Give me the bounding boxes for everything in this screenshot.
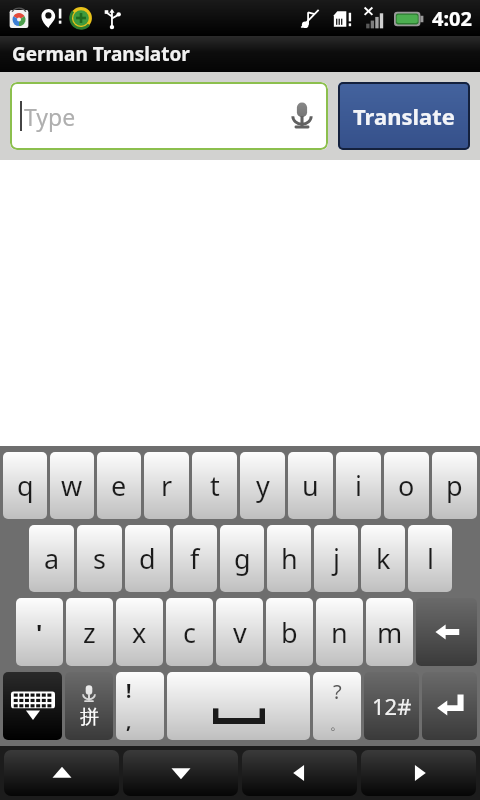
- staticText: s: [93, 540, 106, 577]
- staticText: b: [281, 614, 298, 651]
- staticText: German Translator: [12, 41, 190, 67]
- button[interactable]: q: [3, 452, 47, 519]
- button[interactable]: c: [166, 598, 213, 666]
- staticText: m: [377, 614, 403, 651]
- button[interactable]: v: [216, 598, 263, 666]
- button[interactable]: g: [220, 525, 264, 592]
- staticText: t: [210, 467, 220, 504]
- staticText: q: [17, 467, 34, 504]
- button[interactable]: s: [77, 525, 122, 592]
- button[interactable]: u: [288, 452, 333, 519]
- button[interactable]: t: [192, 452, 237, 519]
- staticText: i: [355, 467, 362, 504]
- button[interactable]: o: [384, 452, 429, 519]
- button[interactable]: m: [366, 598, 413, 666]
- staticText: z: [83, 614, 96, 651]
- staticText: n: [331, 614, 348, 651]
- staticText: k: [376, 540, 391, 577]
- staticText: l: [427, 540, 434, 577]
- button[interactable]: h: [267, 525, 311, 592]
- staticText: f: [190, 540, 200, 577]
- button[interactable]: Backspace: [416, 598, 477, 666]
- button[interactable]: i: [336, 452, 381, 519]
- button[interactable]: x: [116, 598, 163, 666]
- button[interactable]: n: [316, 598, 363, 666]
- button[interactable]: ?: [313, 672, 361, 740]
- button[interactable]: [167, 672, 310, 740]
- button[interactable]: Numbers and symbols: [364, 672, 419, 740]
- staticText: e: [111, 467, 127, 504]
- button[interactable]: a: [29, 525, 74, 592]
- staticText: p: [446, 467, 463, 504]
- staticText: o: [398, 467, 415, 504]
- staticText: u: [302, 467, 319, 504]
- button[interactable]: d: [125, 525, 170, 592]
- button[interactable]: Enter: [422, 672, 477, 740]
- staticText: Translate: [353, 101, 455, 131]
- button[interactable]: Hide keyboard: [3, 672, 62, 740]
- button[interactable]: l: [408, 525, 452, 592]
- staticText: h: [281, 540, 298, 577]
- button[interactable]: k: [361, 525, 405, 592]
- staticText: d: [139, 540, 156, 577]
- button[interactable]: Move right: [361, 750, 476, 796]
- staticText: !: [126, 678, 132, 704]
- button[interactable]: r: [144, 452, 189, 519]
- button[interactable]: Voice and pinyin: [65, 672, 113, 740]
- button[interactable]: w: [50, 452, 94, 519]
- button[interactable]: ': [16, 598, 63, 666]
- staticText: ,: [126, 708, 132, 734]
- staticText: g: [234, 540, 251, 577]
- staticText: 拼: [80, 705, 99, 729]
- staticText: ': [36, 616, 43, 649]
- staticText: ?: [333, 678, 342, 705]
- staticText: w: [61, 467, 83, 504]
- button[interactable]: f: [173, 525, 217, 592]
- staticText: Type: [24, 101, 76, 132]
- button[interactable]: !: [116, 672, 164, 740]
- button[interactable]: y: [240, 452, 285, 519]
- button[interactable]: b: [266, 598, 313, 666]
- button[interactable]: Type: [10, 82, 328, 150]
- button[interactable]: Scroll down: [123, 750, 238, 796]
- button[interactable]: Voice input: [282, 96, 322, 136]
- button[interactable]: z: [66, 598, 113, 666]
- staticText: 。: [330, 716, 344, 734]
- staticText: v: [233, 614, 247, 651]
- staticText: x: [132, 614, 147, 651]
- button[interactable]: Translate: [338, 82, 470, 150]
- staticText: y: [256, 467, 270, 504]
- staticText: 4:02: [432, 5, 472, 32]
- button[interactable]: j: [314, 525, 358, 592]
- staticText: 12#: [372, 691, 412, 721]
- staticText: a: [44, 540, 60, 577]
- button[interactable]: Move left: [242, 750, 357, 796]
- staticText: j: [333, 540, 340, 577]
- staticText: r: [161, 467, 173, 504]
- button[interactable]: p: [432, 452, 477, 519]
- staticText: c: [183, 614, 196, 651]
- button[interactable]: Scroll up: [4, 750, 119, 796]
- button[interactable]: e: [97, 452, 141, 519]
